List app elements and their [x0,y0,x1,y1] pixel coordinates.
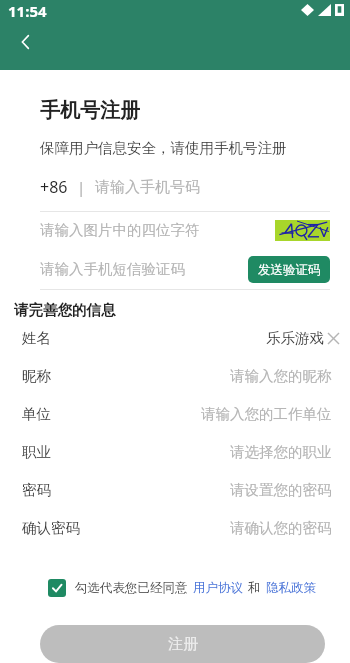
button[interactable]: 隐私政策 [266,580,316,596]
staticText: 昵称 [22,367,51,385]
button[interactable]: 勾选代表您已经同意 [48,579,350,597]
staticText: 请输入手机短信验证码 [40,260,248,278]
staticText: 请选择您的职业 [230,443,332,461]
staticText: 请输入您的工作单位 [201,405,332,423]
staticText: 11:54 [8,1,47,21]
button[interactable]: Clear [324,329,342,347]
button[interactable]: 姓名 [22,319,342,357]
button[interactable]: 昵称 [22,357,342,395]
staticText: 请输入图片中的四位字符 [40,221,275,239]
staticText: 请输入手机号码 [95,178,200,197]
button[interactable]: 单位 [22,395,342,433]
staticText: 确认密码 [22,519,80,537]
button[interactable]: 注册 [40,625,325,663]
staticText: 和 [248,580,261,596]
staticText: 请完善您的信息 [14,301,116,319]
staticText: 姓名 [22,329,51,347]
staticText: 密码 [22,481,51,499]
button[interactable]: Back [6,22,46,62]
staticText: 勾选代表您已经同意 [75,580,188,596]
staticText: 乐乐游戏 [266,329,324,347]
staticText: 请确认您的密码 [230,519,332,537]
staticText: | [77,177,86,197]
staticText: 注册 [168,635,198,654]
staticText: 请输入您的昵称 [230,367,332,385]
button[interactable]: 确认密码 [22,509,342,547]
staticText: 单位 [22,405,51,423]
staticText: 手机号注册 [40,98,140,123]
staticText: 发送验证码 [258,262,321,278]
button[interactable]: +86 [40,171,330,203]
staticText: +86 [40,176,68,198]
button[interactable]: 用户协议 [193,580,243,596]
button[interactable]: 请输入图片中的四位字符 [40,212,330,248]
button[interactable]: 职业 [22,433,342,471]
staticText: 职业 [22,443,51,461]
button[interactable]: 发送验证码 [248,256,330,283]
button[interactable]: 密码 [22,471,342,509]
staticText: 保障用户信息安全，请使用手机号注册 [40,139,287,157]
staticText: 请设置您的密码 [230,481,332,499]
